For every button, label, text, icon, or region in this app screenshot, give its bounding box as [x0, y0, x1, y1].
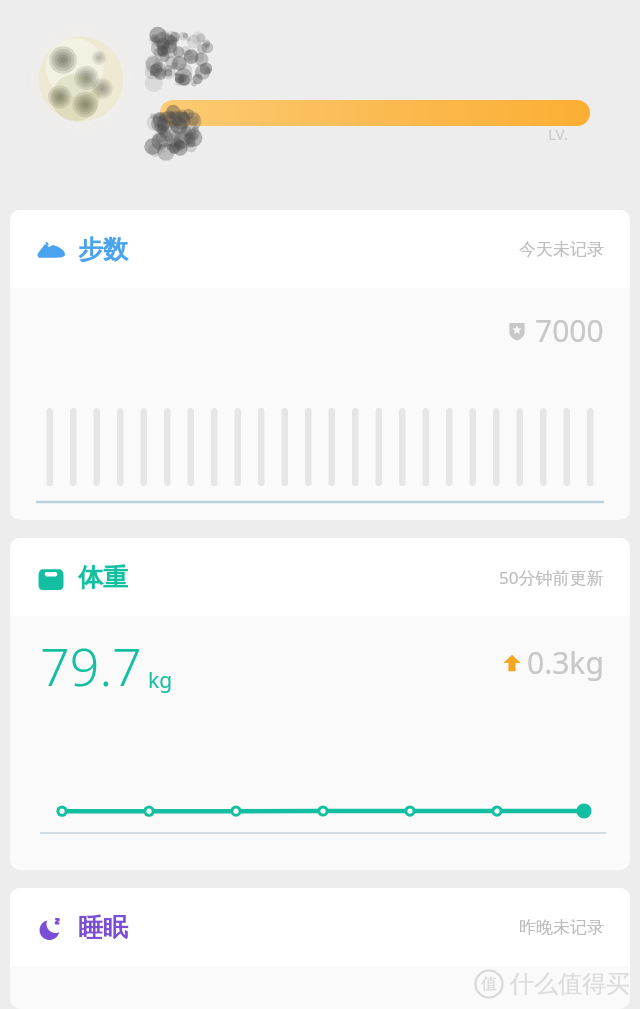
staticText: 值 [481, 974, 497, 994]
staticText: LV. [548, 124, 568, 144]
staticText: 睡眠 [78, 912, 128, 943]
staticText: 50分钟前更新 [499, 566, 604, 589]
staticText: 步数 [78, 234, 128, 265]
staticText: kg [148, 666, 173, 695]
staticText: 昨晚未记录 [519, 917, 604, 938]
button[interactable]: 睡眠 [10, 888, 630, 1009]
button[interactable]: 步数 [10, 210, 630, 520]
staticText: 什么值得买 [510, 969, 630, 999]
button[interactable]: Level progress [160, 100, 590, 126]
button[interactable]: Profile photo [28, 26, 134, 132]
staticText: 7000 [535, 310, 604, 351]
staticText: 0.3kg [527, 642, 604, 683]
staticText: 今天未记录 [519, 239, 604, 260]
staticText: 体重 [78, 562, 128, 593]
button[interactable]: 体重 [10, 538, 630, 870]
staticText: 79.7 [40, 630, 142, 701]
